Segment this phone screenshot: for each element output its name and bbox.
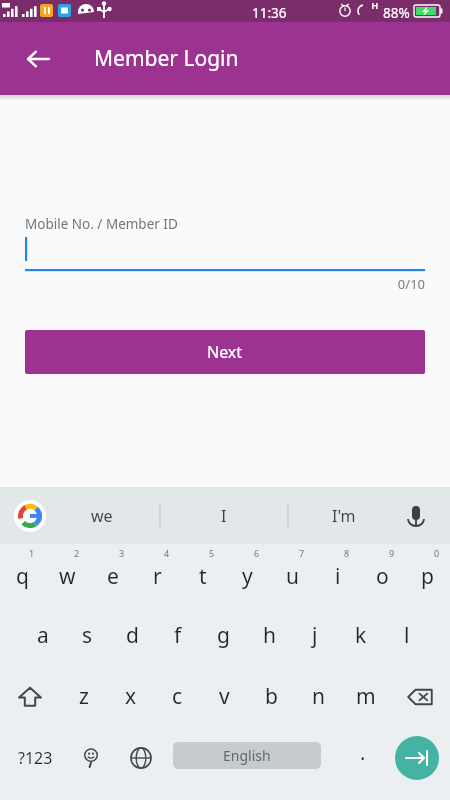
- staticText: k: [355, 621, 367, 650]
- staticText: x: [125, 682, 137, 711]
- staticText: q: [16, 562, 29, 591]
- button[interactable]: g: [200, 605, 246, 666]
- staticText: u: [286, 562, 299, 591]
- button[interactable]: 5: [180, 544, 225, 605]
- button[interactable]: h: [246, 605, 292, 666]
- staticText: p: [421, 562, 434, 591]
- button[interactable]: m: [342, 666, 389, 727]
- button[interactable]: s: [65, 605, 110, 666]
- button[interactable]: d: [110, 605, 155, 666]
- staticText: b: [265, 682, 278, 711]
- button[interactable]: 4: [135, 544, 180, 605]
- staticText: s: [82, 621, 93, 650]
- button[interactable]: Emoji: [66, 727, 116, 789]
- staticText: w: [59, 562, 76, 591]
- staticText: 7: [299, 547, 305, 559]
- button[interactable]: f: [155, 605, 200, 666]
- button[interactable]: Enter: [395, 736, 439, 780]
- staticText: r: [153, 562, 162, 591]
- button[interactable]: 8: [315, 544, 360, 605]
- button[interactable]: I'm: [299, 487, 389, 544]
- staticText: 5: [209, 547, 215, 559]
- staticText: j: [312, 621, 318, 650]
- staticText: 4: [164, 547, 170, 559]
- button[interactable]: a: [20, 605, 65, 666]
- button[interactable]: we: [57, 487, 147, 544]
- staticText: 2: [74, 547, 80, 559]
- staticText: 1: [29, 547, 35, 559]
- staticText: Mobile No. / Member ID: [25, 215, 178, 233]
- staticText: h: [263, 621, 276, 650]
- staticText: I: [221, 505, 227, 527]
- button[interactable]: Change language: [116, 727, 166, 789]
- staticText: ?123: [18, 747, 53, 769]
- button[interactable]: ?123: [4, 727, 66, 789]
- staticText: I'm: [332, 505, 356, 527]
- button[interactable]: n: [295, 666, 342, 727]
- button[interactable]: I: [179, 487, 269, 544]
- staticText: 8: [344, 547, 350, 559]
- button[interactable]: 9: [360, 544, 405, 605]
- button[interactable]: Back: [16, 37, 60, 81]
- staticText: g: [217, 621, 230, 650]
- button[interactable]: z: [60, 666, 107, 727]
- staticText: 0/10: [25, 275, 425, 293]
- staticText: 3: [119, 547, 125, 559]
- button[interactable]: [25, 233, 425, 271]
- button[interactable]: b: [248, 666, 295, 727]
- button[interactable]: English: [173, 742, 321, 769]
- staticText: a: [37, 621, 49, 650]
- button[interactable]: 1: [0, 544, 45, 605]
- staticText: Member Login: [94, 44, 239, 73]
- button[interactable]: c: [154, 666, 201, 727]
- button[interactable]: j: [292, 605, 338, 666]
- staticText: o: [376, 562, 389, 591]
- staticText: 11:36: [252, 4, 287, 22]
- staticText: i: [335, 562, 341, 591]
- staticText: 88%: [383, 4, 410, 22]
- button[interactable]: 6: [225, 544, 270, 605]
- button[interactable]: 0: [405, 544, 450, 605]
- button[interactable]: Backspace: [389, 666, 450, 727]
- staticText: f: [174, 621, 182, 650]
- staticText: v: [219, 682, 230, 711]
- staticText: 9: [389, 547, 395, 559]
- button[interactable]: Voice input: [400, 500, 432, 532]
- button[interactable]: 2: [45, 544, 90, 605]
- staticText: m: [356, 682, 376, 711]
- staticText: y: [242, 562, 253, 591]
- button[interactable]: l: [384, 605, 430, 666]
- button[interactable]: 7: [270, 544, 315, 605]
- button[interactable]: v: [201, 666, 248, 727]
- button[interactable]: .: [340, 727, 386, 789]
- staticText: d: [126, 621, 139, 650]
- staticText: we: [91, 505, 113, 527]
- button[interactable]: Next: [25, 330, 425, 374]
- button[interactable]: x: [107, 666, 154, 727]
- staticText: English: [223, 746, 271, 765]
- staticText: Next: [207, 341, 243, 363]
- staticText: z: [79, 682, 89, 711]
- button[interactable]: 3: [90, 544, 135, 605]
- staticText: t: [199, 562, 207, 591]
- staticText: n: [312, 682, 325, 711]
- button[interactable]: Google Search: [14, 500, 46, 532]
- staticText: e: [107, 562, 119, 591]
- staticText: l: [404, 621, 410, 650]
- staticText: c: [172, 682, 183, 711]
- staticText: .: [360, 739, 366, 766]
- staticText: 0: [434, 547, 440, 559]
- staticText: 6: [254, 547, 260, 559]
- button[interactable]: k: [338, 605, 384, 666]
- button[interactable]: Shift: [0, 666, 60, 727]
